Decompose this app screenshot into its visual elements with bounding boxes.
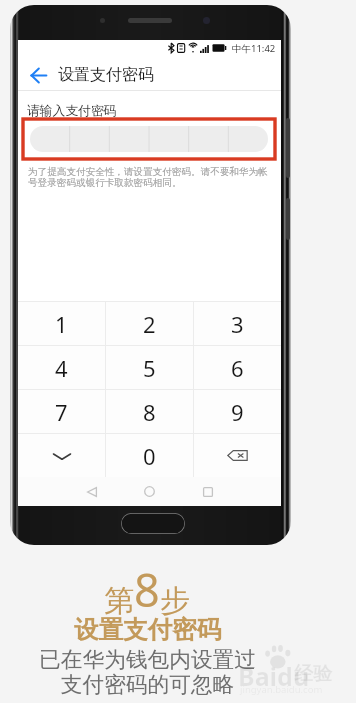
staticText: 请输入支付密码: [27, 103, 117, 119]
button[interactable]: 6: [194, 346, 281, 389]
button[interactable]: 8: [106, 390, 193, 433]
staticText: 2: [143, 309, 156, 339]
staticText: 5: [143, 353, 156, 383]
staticText: 4: [55, 353, 68, 383]
button[interactable]: Back: [77, 477, 106, 506]
staticText: 第: [104, 582, 134, 620]
button[interactable]: Home button: [121, 513, 185, 534]
staticText: 6: [231, 353, 244, 383]
button[interactable]: 5: [106, 346, 193, 389]
staticText: 为了提高支付安全性，请设置支付密码。请不要和华为帐 号登录密码或银行卡取款密码相…: [28, 166, 268, 189]
staticText: 8: [143, 397, 156, 427]
button[interactable]: 2: [106, 302, 193, 345]
staticText: 7: [55, 397, 68, 427]
staticText: 设置支付密码: [74, 614, 221, 645]
button[interactable]: 7: [18, 390, 105, 433]
staticText: 1: [55, 309, 68, 339]
button[interactable]: Home: [135, 477, 164, 506]
staticText: 经验: [294, 662, 332, 686]
staticText: 9: [231, 397, 244, 427]
staticText: 3: [231, 309, 244, 339]
other: Hide keyboard: [52, 446, 72, 466]
button[interactable]: 9: [194, 390, 281, 433]
button[interactable]: 4: [18, 346, 105, 389]
staticText: 0: [143, 441, 156, 471]
button[interactable]: Recents: [193, 477, 222, 506]
other: Delete: [227, 445, 248, 466]
button[interactable]: 1: [18, 302, 105, 345]
staticText: 中午11:42: [232, 42, 276, 55]
staticText: 8: [134, 559, 160, 620]
button[interactable]: Payment password input: [30, 126, 268, 152]
button[interactable]: Delete: [194, 434, 281, 477]
staticText: 已在华为钱包内设置过 支付密码的可忽略: [39, 646, 256, 699]
button[interactable]: Hide keyboard: [18, 434, 105, 477]
button[interactable]: 3: [194, 302, 281, 345]
staticText: Baidu: [238, 659, 310, 693]
staticText: jingyan.baidu.com: [240, 683, 323, 696]
button[interactable]: 0: [106, 434, 193, 477]
staticText: 步: [160, 582, 190, 620]
button[interactable]: Back: [25, 62, 51, 88]
staticText: 设置支付密码: [58, 65, 154, 85]
